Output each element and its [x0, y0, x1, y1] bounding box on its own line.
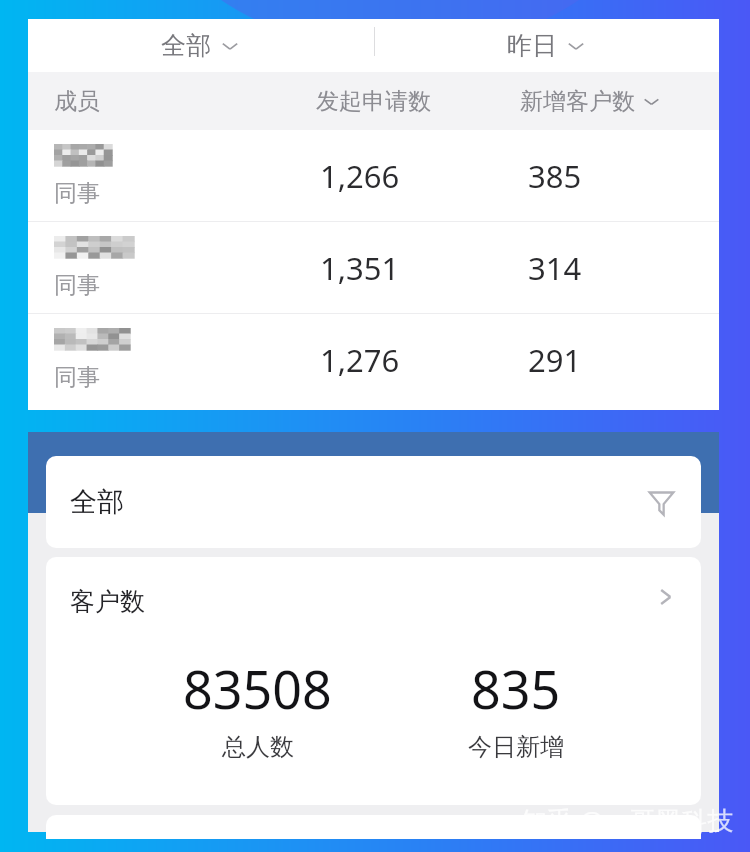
staticText: 全部: [70, 485, 124, 519]
button[interactable]: 同事: [28, 222, 719, 313]
staticText: 总人数: [222, 732, 294, 762]
staticText: 835: [471, 653, 561, 724]
staticText: 385: [528, 155, 582, 197]
staticText: 昨日: [507, 30, 557, 61]
staticText: 1,276: [320, 339, 400, 381]
button[interactable]: 全部: [28, 19, 373, 72]
button[interactable]: 新增客户数: [520, 87, 661, 116]
staticText: 同事: [54, 363, 100, 392]
staticText: 314: [528, 247, 582, 289]
staticText: 291: [528, 339, 582, 381]
staticText: 知乎 @一哥黑科技: [521, 802, 734, 838]
button[interactable]: 同事: [28, 314, 719, 405]
button[interactable]: 同事: [28, 130, 719, 221]
staticText: 今日新增: [468, 732, 564, 762]
staticText: 发起申请数: [316, 87, 431, 116]
staticText: 同事: [54, 271, 100, 300]
staticText: 新增客户数: [520, 87, 635, 116]
button[interactable]: Filter: [643, 484, 679, 520]
staticText: 1,266: [320, 155, 400, 197]
staticText: 成员: [54, 87, 100, 116]
staticText: 全部: [161, 30, 211, 61]
staticText: 83508: [183, 653, 332, 724]
button[interactable]: 客户数: [46, 557, 701, 805]
button[interactable]: 昨日: [373, 19, 719, 72]
button[interactable]: 全部: [46, 456, 701, 548]
staticText: 1,351: [320, 247, 400, 289]
button[interactable]: Open customer details: [649, 581, 681, 613]
staticText: 同事: [54, 179, 100, 208]
staticText: 客户数: [70, 586, 145, 617]
